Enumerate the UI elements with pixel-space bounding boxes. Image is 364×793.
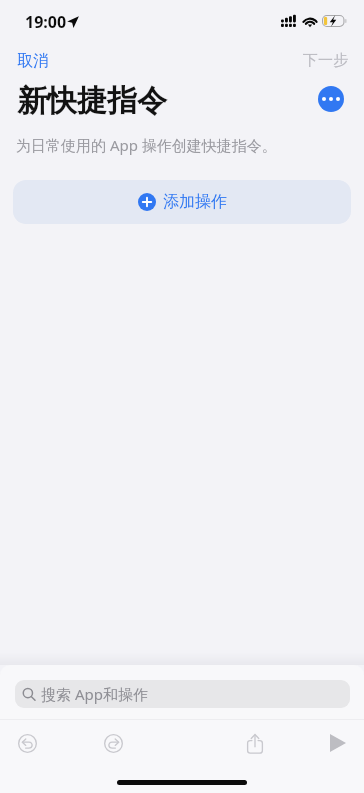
- button[interactable]: More options: [318, 86, 344, 112]
- staticText: 取消: [17, 51, 49, 71]
- staticText: 下一步: [303, 51, 348, 70]
- button[interactable]: 添加操作: [13, 180, 351, 224]
- button[interactable]: Undo: [5, 724, 49, 762]
- staticText: 为日常使用的 App 操作创建快捷指令。: [16, 135, 277, 155]
- staticText: 搜索 App和操作: [41, 684, 148, 704]
- button[interactable]: 搜索 App和操作: [15, 680, 350, 708]
- staticText: 添加操作: [163, 192, 227, 212]
- button[interactable]: Redo: [91, 724, 135, 762]
- button[interactable]: Run: [316, 724, 360, 762]
- staticText: 新快捷指令: [17, 82, 167, 120]
- staticText: 19:00: [25, 11, 67, 33]
- button[interactable]: 下一步: [301, 49, 350, 72]
- button[interactable]: 取消: [15, 49, 51, 73]
- button[interactable]: Share: [233, 724, 277, 762]
